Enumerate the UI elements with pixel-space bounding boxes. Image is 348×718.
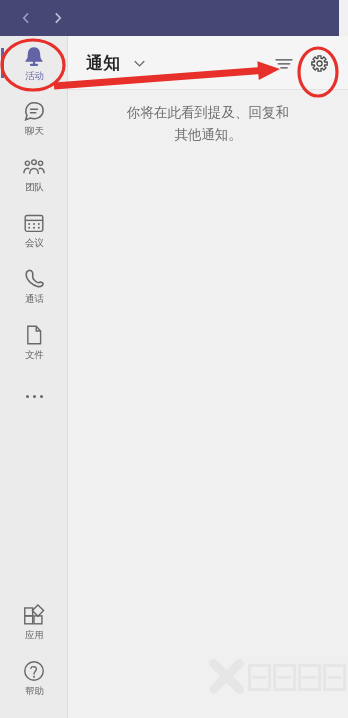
- button[interactable]: Settings: [304, 48, 334, 78]
- staticText: 团队: [25, 181, 44, 193]
- button[interactable]: 文件: [0, 314, 68, 370]
- button[interactable]: More: [0, 370, 68, 422]
- button[interactable]: Forward: [46, 6, 70, 30]
- staticText: 你将在此看到提及、回复和 其他通知。: [92, 104, 324, 143]
- button[interactable]: Expand: [128, 52, 150, 74]
- button[interactable]: 活动: [0, 36, 68, 90]
- button[interactable]: Back: [14, 6, 38, 30]
- button[interactable]: Filter: [270, 49, 298, 77]
- button[interactable]: 通话: [0, 258, 68, 314]
- staticText: 活动: [25, 70, 44, 82]
- button[interactable]: 团队: [0, 146, 68, 202]
- button[interactable]: 会议: [0, 202, 68, 258]
- staticText: 文件: [25, 349, 44, 361]
- staticText: 会议: [25, 237, 44, 249]
- button[interactable]: 聊天: [0, 90, 68, 146]
- staticText: 通话: [25, 293, 44, 305]
- staticText: 应用: [25, 629, 44, 641]
- button[interactable]: 应用: [0, 594, 68, 650]
- staticText: 聊天: [25, 125, 44, 137]
- button[interactable]: 帮助: [0, 650, 68, 706]
- staticText: 通知: [86, 53, 120, 74]
- staticText: 帮助: [25, 685, 44, 697]
